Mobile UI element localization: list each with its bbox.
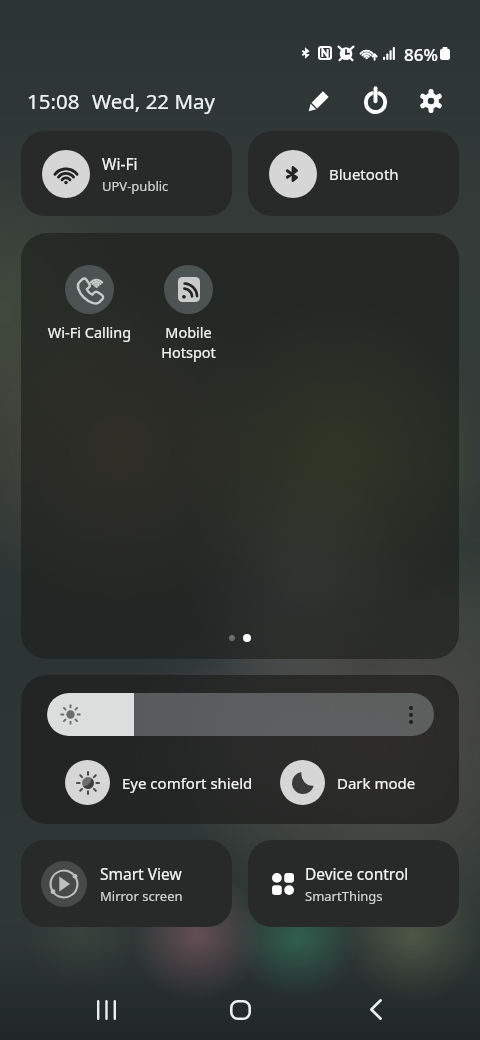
button[interactable]: Brightness <box>47 693 434 736</box>
staticText: UPV-public <box>102 177 169 195</box>
button[interactable]: Dark mode <box>280 760 416 805</box>
staticText: Mirror screen <box>100 887 183 905</box>
staticText: Eye comfort shield <box>122 773 253 793</box>
button[interactable]: Eye comfort shield <box>65 760 253 805</box>
staticText: 15:08 <box>27 87 80 115</box>
button[interactable]: Back <box>331 965 420 1040</box>
button[interactable]: Wi-Fi <box>21 131 232 216</box>
staticText: 86% <box>404 43 438 63</box>
button[interactable]: Mobile Hotspot <box>139 265 238 362</box>
button[interactable]: Power off <box>354 79 397 122</box>
button[interactable]: Smart View <box>21 840 232 927</box>
button[interactable]: Home <box>196 965 285 1040</box>
staticText: Bluetooth <box>329 164 399 184</box>
staticText: Mobile Hotspot <box>139 322 238 362</box>
staticText: Wi-Fi Calling <box>40 322 139 342</box>
staticText: SmartThings <box>305 887 383 905</box>
button[interactable]: Bluetooth <box>248 131 459 216</box>
staticText: Device control <box>305 863 409 884</box>
staticText: Wed, 22 May <box>92 87 215 115</box>
button[interactable]: Wi-Fi Calling <box>40 265 139 342</box>
button[interactable]: Edit buttons <box>298 79 341 122</box>
button[interactable]: Device control <box>248 840 459 927</box>
staticText: Smart View <box>100 863 182 884</box>
staticText: Wi-Fi <box>102 153 138 174</box>
button[interactable]: Settings <box>409 79 452 122</box>
button[interactable]: Recent apps <box>62 965 151 1040</box>
staticText: Dark mode <box>337 773 416 793</box>
